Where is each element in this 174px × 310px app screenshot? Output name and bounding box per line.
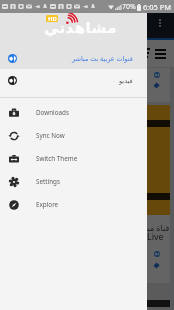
staticText: فيديو bbox=[119, 77, 133, 85]
button[interactable]: قنوات عربية بث مباشر bbox=[0, 47, 147, 69]
staticText: قنوات عربية بث مباشر bbox=[72, 54, 133, 63]
staticText: قناة مباشر bbox=[134, 222, 170, 233]
staticText: 70% bbox=[122, 2, 136, 12]
button[interactable]: Explore bbox=[0, 193, 147, 216]
staticText: HD bbox=[48, 15, 57, 22]
button[interactable]: Downloads bbox=[0, 101, 147, 124]
staticText: مشاهدتي bbox=[44, 19, 117, 36]
staticText: قنوات عربية بث مباشر bbox=[12, 48, 87, 59]
staticText: 6:05 PM bbox=[143, 2, 172, 12]
button[interactable]: Settings bbox=[0, 170, 147, 193]
button[interactable]: Sync Now bbox=[0, 124, 147, 147]
staticText: Downloads bbox=[36, 108, 69, 117]
button[interactable]: Switch Theme bbox=[0, 147, 147, 170]
staticText: Explore bbox=[36, 200, 59, 209]
staticText: Live bbox=[147, 230, 164, 242]
button[interactable]: فيديو bbox=[0, 69, 147, 92]
staticText: Settings bbox=[36, 177, 60, 186]
staticText: Sync Now bbox=[36, 131, 65, 140]
staticText: Switch Theme bbox=[36, 154, 78, 163]
